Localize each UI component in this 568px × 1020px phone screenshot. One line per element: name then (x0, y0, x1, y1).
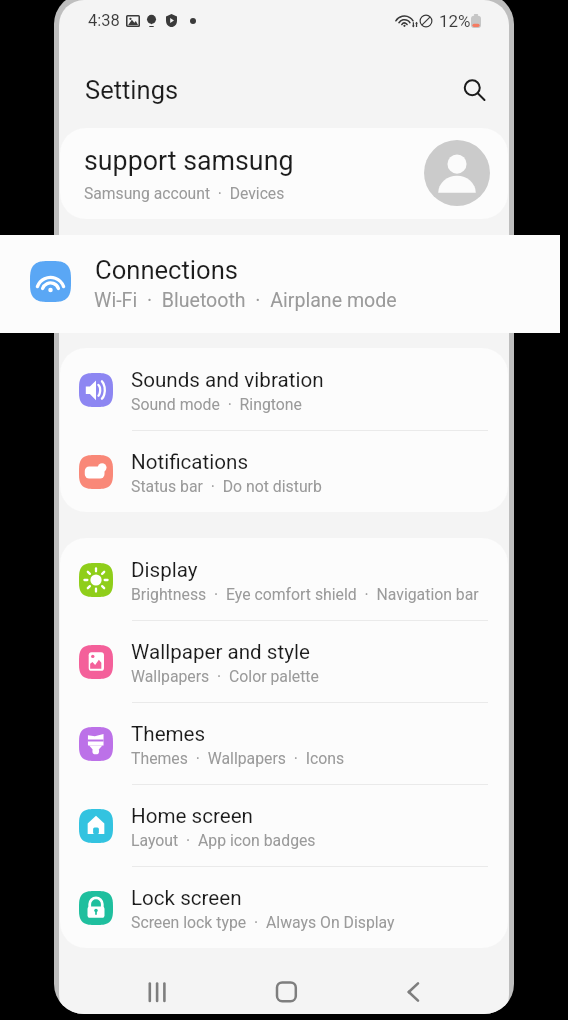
staticText: 4:38 (88, 11, 120, 30)
staticText: Settings (85, 75, 179, 105)
staticText: Connections (95, 255, 239, 285)
button[interactable]: Connections (60, 243, 508, 325)
staticText: Notifications (131, 450, 249, 474)
staticText: Display (131, 558, 198, 582)
staticText: support samsung (84, 145, 294, 176)
staticText: Home screen (131, 804, 253, 828)
staticText: Brightness · Eye comfort shield · Naviga… (131, 585, 479, 604)
staticText: Screen lock type · Always On Display (131, 913, 395, 932)
staticText: Sound mode · Ringtone (131, 395, 302, 414)
button[interactable]: Home screen (60, 784, 508, 866)
button[interactable]: support samsung (60, 128, 508, 219)
staticText: Connections (131, 263, 247, 287)
button[interactable]: Wallpaper and style (60, 620, 508, 702)
staticText: 12% (439, 11, 471, 31)
button[interactable]: Search (452, 68, 496, 112)
staticText: Wallpapers · Color palette (131, 667, 319, 686)
staticText: Layout · App icon badges (131, 831, 316, 850)
button[interactable]: Recents (134, 967, 182, 1014)
staticText: Themes · Wallpapers · Icons (131, 749, 345, 768)
staticText: Sounds and vibration (131, 368, 324, 392)
button[interactable]: Notifications (60, 430, 508, 512)
button[interactable]: Home (262, 967, 310, 1014)
button[interactable]: Display (60, 538, 508, 620)
button[interactable]: Themes (60, 702, 508, 784)
button[interactable]: Back (390, 967, 438, 1014)
staticText: Themes (131, 722, 206, 746)
button[interactable]: Lock screen (60, 866, 508, 948)
button[interactable]: Sounds and vibration (60, 348, 508, 430)
staticText: Samsung account · Devices (84, 184, 285, 202)
staticText: Wi-Fi · Bluetooth · Airplane mode (94, 289, 397, 312)
staticText: Lock screen (131, 886, 242, 910)
staticText: Wi-Fi · Bluetooth · Airplane mode (131, 290, 376, 309)
button[interactable]: Connections (0, 235, 560, 333)
staticText: Status bar · Do not disturb (131, 477, 322, 496)
staticText: Wallpaper and style (131, 640, 310, 664)
